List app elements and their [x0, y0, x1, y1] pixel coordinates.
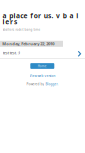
- staticText: a place for us. v b a l: [2, 11, 78, 20]
- staticText: test test. :): [3, 50, 20, 55]
- staticText: vballers: rockit bang time: [3, 28, 41, 32]
- staticText: l e r s: [2, 17, 17, 26]
- staticText: Powered by: [26, 82, 44, 86]
- button[interactable]: View web version: [0, 74, 85, 78]
- button[interactable]: Blogger.: [45, 82, 58, 86]
- staticText: Blogger.: [45, 82, 58, 86]
- staticText: View web version: [29, 74, 55, 78]
- button[interactable]: Newer posts: [74, 49, 84, 59]
- button[interactable]: Home: [30, 63, 54, 69]
- staticText: Home: [38, 64, 47, 68]
- staticText: Monday, February 22, 2010: [2, 41, 54, 46]
